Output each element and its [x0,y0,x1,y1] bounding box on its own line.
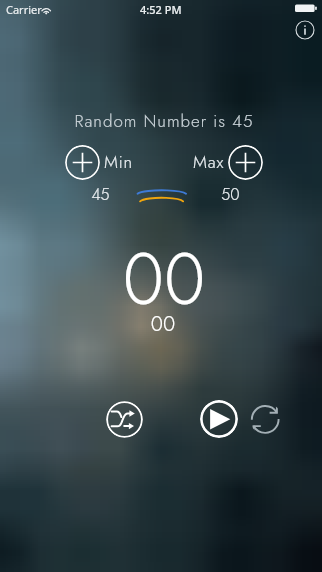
staticText: 4:52 PM [140,2,182,17]
button[interactable]: Shuffle [106,401,143,438]
staticText: Carrier [6,2,42,17]
button[interactable]: Increase Max [228,145,263,180]
staticText: Max [193,150,225,175]
staticText: 00 [3,228,322,572]
staticText: Min [104,150,133,175]
button[interactable]: Info [295,20,315,40]
button[interactable]: Increase Min [65,145,100,180]
button[interactable]: Repeat [250,403,282,435]
staticText: 45 [88,183,113,206]
button[interactable]: Play [200,400,238,438]
staticText: Random Number is 45 [3,109,322,572]
staticText: 50 [218,183,243,206]
staticText: 00 [2,309,322,572]
